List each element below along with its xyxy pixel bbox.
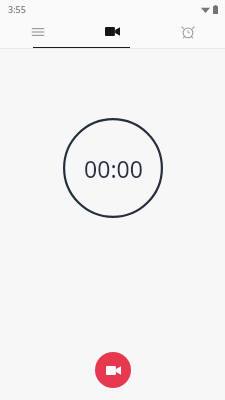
staticText: 3:55 (8, 3, 26, 15)
button[interactable]: Menu (0, 18, 75, 49)
staticText: 00:00 (84, 153, 143, 184)
button[interactable]: Alarms (150, 18, 225, 49)
button[interactable]: Record (75, 18, 150, 49)
button[interactable]: Start recording (95, 352, 131, 388)
